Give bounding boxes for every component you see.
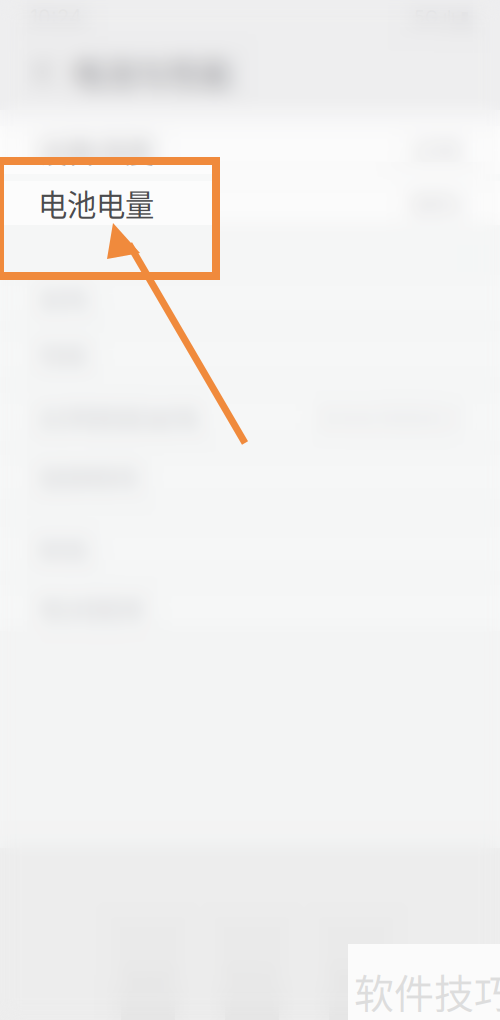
button[interactable]: 锁屏断网: [0, 455, 500, 499]
button[interactable]: 应用智能省电: [0, 393, 500, 441]
staticText: 软件技巧: [354, 962, 500, 1020]
button[interactable]: 省电: [0, 275, 500, 321]
button[interactable]: 电池电量: [0, 181, 500, 225]
button[interactable]: 电池管家: [0, 585, 500, 631]
button[interactable]: 设备温度: [0, 126, 500, 174]
staticText: 管理: [332, 963, 380, 998]
button[interactable]: 管理: [304, 848, 408, 1020]
staticText: 设备温度: [38, 129, 154, 171]
staticText: 电池电量: [38, 182, 154, 224]
staticText: 电池与性能: [72, 49, 232, 95]
button[interactable]: 性能: [0, 331, 500, 377]
